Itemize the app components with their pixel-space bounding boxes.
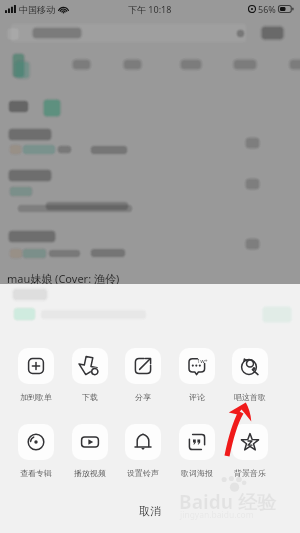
staticText: 下午 10:18: [128, 3, 172, 15]
staticText: 加到歌单: [20, 392, 52, 402]
staticText: 56%: [258, 3, 276, 15]
button[interactable]: [179, 424, 215, 460]
staticText: 取消: [139, 504, 161, 518]
staticText: 下载: [82, 392, 98, 402]
staticText: 查看专辑: [20, 468, 52, 478]
button[interactable]: 1w+: [179, 348, 215, 384]
staticText: 设置铃声: [127, 468, 159, 478]
staticText: mau妹娘 (Cover: 渔伶): [7, 271, 120, 286]
staticText: 歌词海报: [181, 468, 213, 478]
staticText: 播放视频: [74, 468, 106, 478]
button[interactable]: [232, 348, 268, 384]
button[interactable]: [125, 424, 161, 460]
staticText: 背景音乐: [234, 468, 266, 478]
staticText: 1w+: [197, 357, 208, 364]
staticText: 评论: [189, 392, 205, 402]
button[interactable]: 取消: [0, 498, 300, 524]
button[interactable]: [232, 424, 268, 460]
button[interactable]: [72, 424, 108, 460]
staticText: Baidu 经验: [179, 489, 276, 515]
button[interactable]: [72, 348, 108, 384]
staticText: 中国移动: [19, 4, 55, 15]
button[interactable]: [125, 348, 161, 384]
button[interactable]: [18, 348, 54, 384]
staticText: 分享: [135, 392, 151, 402]
button[interactable]: [18, 424, 54, 460]
staticText: 唱这首歌: [234, 392, 266, 402]
